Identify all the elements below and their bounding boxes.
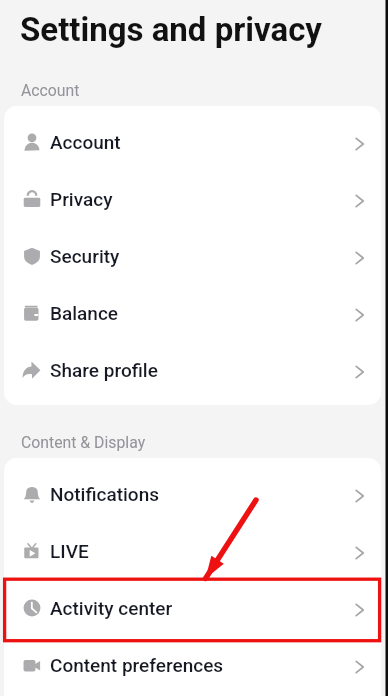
staticText: Privacy [50, 188, 113, 210]
staticText: Settings and privacy [20, 10, 322, 49]
other: Open Privacy [355, 194, 365, 208]
staticText: Account [50, 131, 121, 153]
other: Open Account [355, 137, 365, 151]
other: Open Balance [355, 308, 365, 322]
button[interactable]: Notifications [4, 465, 381, 522]
staticText: Balance [50, 302, 118, 324]
other: Open Notifications [355, 489, 365, 503]
button[interactable]: Privacy [4, 170, 381, 227]
button[interactable]: Content preferences [4, 636, 381, 693]
other: Open Activity center [355, 603, 365, 617]
button[interactable]: Security [4, 227, 381, 284]
button[interactable]: LIVE [4, 522, 381, 579]
other: Open Security [355, 251, 365, 265]
staticText: Content preferences [50, 654, 224, 676]
button[interactable]: Account [4, 113, 381, 170]
staticText: Share profile [50, 359, 158, 381]
other: Open Content preferences [355, 660, 365, 674]
staticText: Security [50, 245, 120, 267]
staticText: Notifications [50, 483, 159, 505]
button[interactable]: Share profile [4, 341, 381, 398]
staticText: Activity center [50, 597, 173, 619]
other: Open LIVE [355, 546, 365, 560]
button[interactable]: Balance [4, 284, 381, 341]
staticText: Content & Display [21, 433, 146, 452]
other: Open Share profile [355, 365, 365, 379]
staticText: LIVE [50, 540, 89, 562]
button[interactable]: Activity center [4, 579, 381, 636]
staticText: Account [21, 81, 80, 100]
